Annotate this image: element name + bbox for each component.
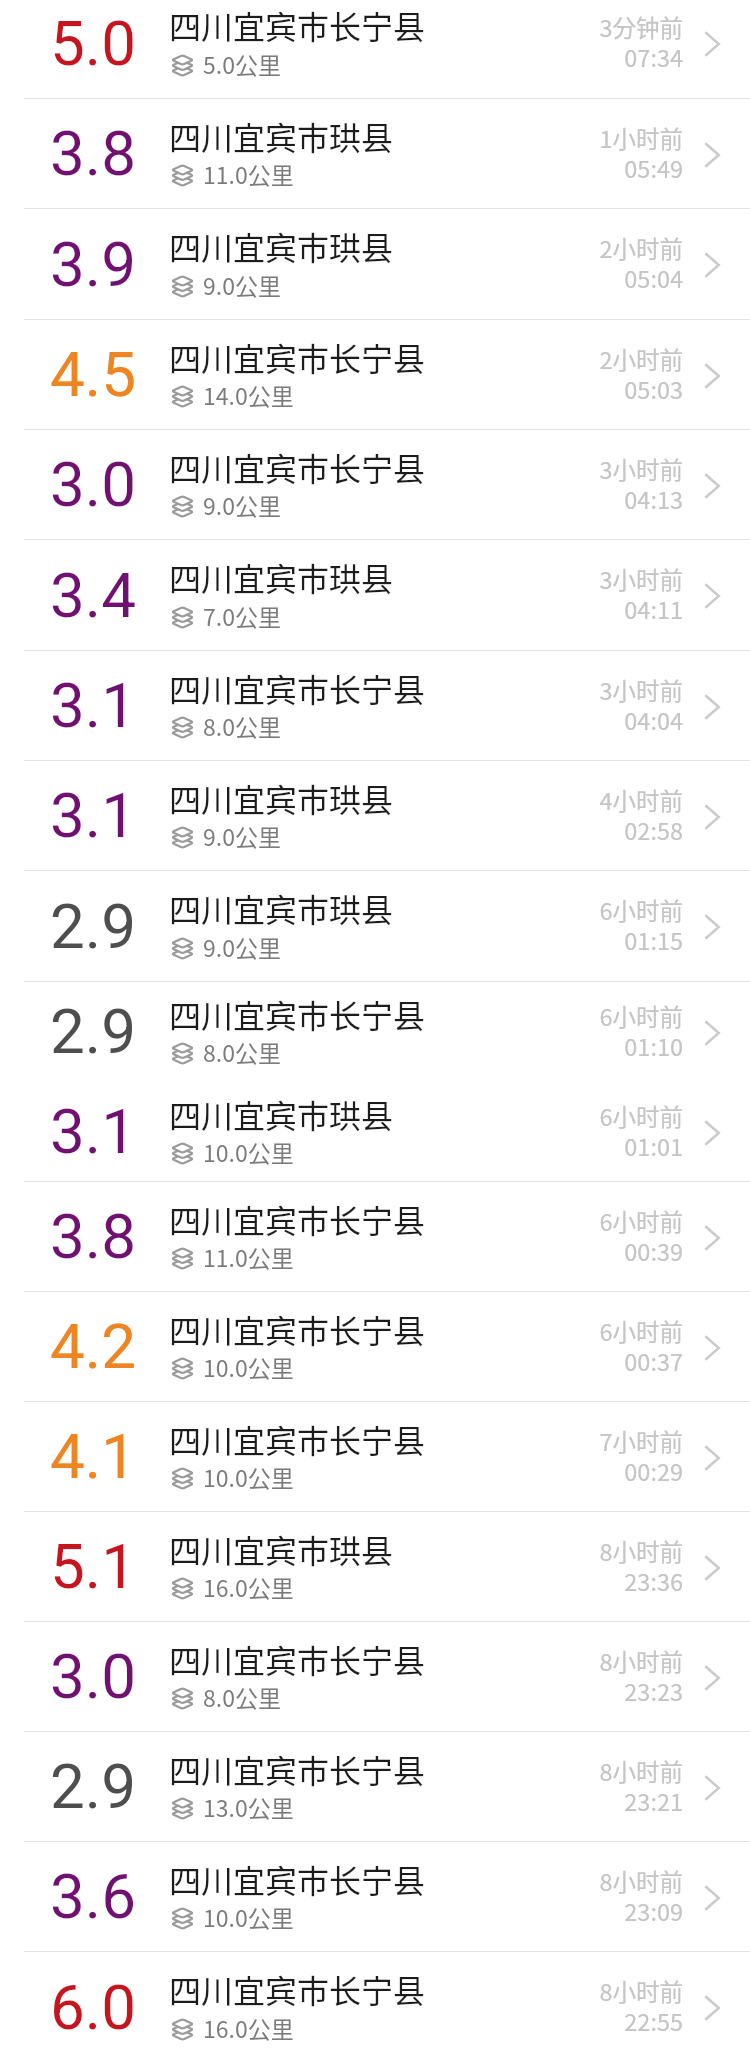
button[interactable]: 3.4 [0, 540, 750, 650]
staticText: 23:36 [624, 1564, 683, 1598]
staticText: 5.0 [50, 7, 137, 80]
staticText: 00:37 [624, 1344, 683, 1378]
other: Open earthquake detail [704, 1445, 720, 1471]
staticText: 8小时前 [599, 1644, 683, 1678]
staticText: 四川宜宾市长宁县 [169, 1746, 426, 1792]
staticText: 00:29 [624, 1454, 683, 1488]
staticText: 05:49 [624, 151, 683, 185]
other: Open earthquake detail [704, 1555, 720, 1581]
staticText: 四川宜宾市长宁县 [169, 1416, 426, 1462]
staticText: 2.9 [50, 995, 137, 1068]
button[interactable]: 3.8 [0, 99, 750, 208]
button[interactable]: 4.2 [0, 1292, 750, 1401]
staticText: 04:13 [624, 482, 683, 516]
staticText: 05:03 [624, 372, 683, 406]
staticText: 23:21 [624, 1784, 683, 1818]
staticText: 6.0 [50, 1971, 137, 2044]
staticText: 5.0公里 [203, 47, 281, 80]
staticText: 3.0 [50, 448, 137, 521]
other: Open earthquake detail [704, 473, 720, 499]
staticText: 4小时前 [599, 783, 683, 817]
staticText: 10.0公里 [203, 1350, 294, 1383]
staticText: 6小时前 [599, 999, 683, 1033]
staticText: 11.0公里 [203, 157, 294, 190]
button[interactable]: 3.9 [0, 209, 750, 319]
staticText: 7小时前 [599, 1424, 683, 1458]
staticText: 四川宜宾市珙县 [169, 1091, 394, 1137]
staticText: 8小时前 [599, 1974, 683, 2008]
button[interactable]: 3.6 [0, 1842, 750, 1951]
other: Open earthquake detail [704, 142, 720, 168]
staticText: 23:23 [624, 1674, 683, 1708]
staticText: 3.1 [50, 669, 137, 742]
staticText: 05:04 [624, 261, 683, 295]
staticText: 3.1 [50, 1095, 137, 1168]
staticText: 3小时前 [599, 673, 683, 707]
staticText: 14.0公里 [203, 378, 294, 411]
staticText: 4.2 [50, 1310, 137, 1383]
other: Open earthquake detail [704, 1020, 720, 1046]
button[interactable]: 6.0 [0, 1952, 750, 2056]
button[interactable]: 2.9 [0, 871, 750, 981]
staticText: 16.0公里 [203, 2011, 294, 2044]
button[interactable]: 3.0 [0, 430, 750, 539]
button[interactable]: 3.1 [0, 1082, 750, 1181]
staticText: 5.1 [50, 1530, 137, 1603]
staticText: 6小时前 [599, 1204, 683, 1238]
staticText: 3小时前 [599, 452, 683, 486]
staticText: 四川宜宾市珙县 [169, 113, 394, 159]
staticText: 2小时前 [599, 231, 683, 265]
other: Open earthquake detail [704, 252, 720, 278]
staticText: 四川宜宾市长宁县 [169, 991, 426, 1037]
staticText: 9.0公里 [203, 268, 281, 301]
staticText: 3分钟前 [599, 10, 683, 44]
staticText: 四川宜宾市珙县 [169, 1526, 394, 1572]
staticText: 四川宜宾市长宁县 [169, 665, 426, 711]
staticText: 8小时前 [599, 1864, 683, 1898]
button[interactable]: 4.5 [0, 320, 750, 429]
button[interactable]: 4.1 [0, 1402, 750, 1511]
button[interactable]: 2.9 [0, 1732, 750, 1841]
staticText: 13.0公里 [203, 1790, 294, 1823]
staticText: 00:39 [624, 1234, 683, 1268]
staticText: 四川宜宾市长宁县 [169, 1306, 426, 1352]
staticText: 3.9 [50, 228, 137, 301]
button[interactable]: 2.9 [0, 982, 750, 1081]
staticText: 7.0公里 [203, 599, 281, 632]
staticText: 10.0公里 [203, 1460, 294, 1493]
staticText: 2小时前 [599, 342, 683, 376]
staticText: 9.0公里 [203, 930, 281, 963]
staticText: 01:10 [624, 1029, 683, 1063]
other: Open earthquake detail [704, 1775, 720, 1801]
other: Open earthquake detail [704, 804, 720, 830]
staticText: 2.9 [50, 890, 137, 963]
other: Open earthquake detail [704, 914, 720, 940]
button[interactable]: 3.1 [0, 651, 750, 760]
button[interactable]: 3.0 [0, 1622, 750, 1731]
other: Open earthquake detail [704, 1885, 720, 1911]
staticText: 16.0公里 [203, 1570, 294, 1603]
other: Open earthquake detail [704, 1225, 720, 1251]
button[interactable]: 5.0 [0, 0, 750, 98]
staticText: 3.8 [50, 1200, 137, 1273]
staticText: 1小时前 [599, 121, 683, 155]
other: Open earthquake detail [704, 1995, 720, 2021]
staticText: 9.0公里 [203, 488, 281, 521]
staticText: 四川宜宾市珙县 [169, 885, 394, 931]
staticText: 8.0公里 [203, 1035, 281, 1068]
staticText: 四川宜宾市长宁县 [169, 2, 426, 48]
staticText: 10.0公里 [203, 1900, 294, 1933]
staticText: 四川宜宾市长宁县 [169, 444, 426, 490]
other: Open earthquake detail [704, 694, 720, 720]
staticText: 四川宜宾市长宁县 [169, 1966, 426, 2012]
staticText: 四川宜宾市长宁县 [169, 1636, 426, 1682]
button[interactable]: 5.1 [0, 1512, 750, 1621]
staticText: 11.0公里 [203, 1240, 294, 1273]
staticText: 4.1 [50, 1420, 137, 1493]
staticText: 01:01 [624, 1129, 683, 1163]
button[interactable]: 3.8 [0, 1182, 750, 1291]
staticText: 01:15 [624, 923, 683, 957]
other: Open earthquake detail [704, 1120, 720, 1146]
button[interactable]: 3.1 [0, 761, 750, 870]
staticText: 8.0公里 [203, 1680, 281, 1713]
